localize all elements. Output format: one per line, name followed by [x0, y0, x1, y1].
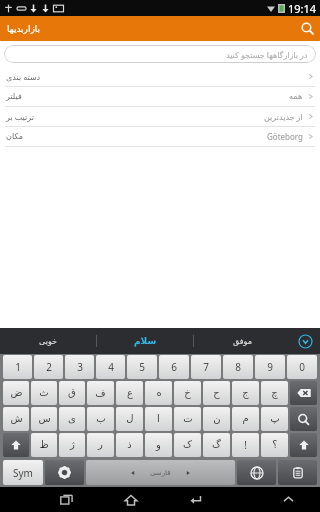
button[interactable]: سلام — [97, 328, 193, 354]
button[interactable]: Recents — [49, 487, 83, 512]
staticText: خوبی — [39, 337, 57, 346]
staticText: ظ — [39, 439, 49, 451]
staticText: 8 — [235, 360, 241, 374]
button[interactable]: خوبی — [0, 328, 96, 354]
button[interactable]: Shift — [290, 433, 317, 457]
staticText: 19:14 — [288, 1, 317, 16]
button[interactable]: ژ — [59, 433, 85, 457]
button[interactable]: ج — [232, 381, 259, 405]
staticText: ن — [213, 413, 221, 425]
staticText: همه — [289, 92, 303, 101]
button[interactable]: گ — [203, 433, 230, 457]
staticText: از جدیدترین — [264, 111, 303, 122]
button[interactable]: خ — [174, 381, 201, 405]
staticText: ق — [68, 387, 76, 399]
staticText: ا — [157, 413, 160, 425]
button[interactable]: ش — [3, 407, 29, 431]
button[interactable]: دسته بندی — [0, 67, 320, 87]
button[interactable]: ا — [145, 407, 172, 431]
staticText: ی — [68, 413, 76, 425]
staticText: م — [242, 413, 249, 425]
staticText: فیلتر — [6, 92, 22, 101]
button[interactable]: فیلتر — [0, 87, 320, 107]
button[interactable]: ب — [87, 407, 114, 431]
button[interactable]: 9 — [255, 355, 285, 379]
button[interactable]: ث — [31, 381, 57, 405]
button[interactable]: پ — [261, 407, 288, 431]
button[interactable]: 2 — [34, 355, 63, 379]
button[interactable]: ه — [145, 381, 172, 405]
button[interactable]: Change language — [237, 460, 276, 485]
button[interactable]: م — [232, 407, 259, 431]
button[interactable]: چ — [261, 381, 288, 405]
button[interactable]: 3 — [65, 355, 94, 379]
button[interactable]: ق — [59, 381, 85, 405]
staticText: Sym — [13, 466, 33, 480]
staticText: 5 — [139, 360, 145, 374]
staticText: س — [38, 413, 51, 425]
staticText: ت — [183, 413, 193, 425]
button[interactable]: ترتیب بر — [0, 107, 320, 127]
button[interactable]: 6 — [159, 355, 189, 379]
staticText: ترتیب بر — [6, 111, 34, 122]
staticText: ! — [244, 438, 247, 452]
button[interactable]: ذ — [116, 433, 143, 457]
button[interactable]: موفق — [194, 328, 290, 354]
button[interactable]: ح — [203, 381, 230, 405]
button[interactable]: س — [31, 407, 57, 431]
staticText: خ — [184, 387, 191, 399]
button[interactable]: Backspace — [290, 381, 317, 405]
button[interactable]: ظ — [31, 433, 57, 457]
staticText: بازاربدیها — [7, 24, 41, 34]
button[interactable]: Clipboard — [278, 460, 317, 485]
button[interactable]: ع — [116, 381, 143, 405]
button[interactable]: Space — [86, 460, 235, 485]
button[interactable]: 0 — [287, 355, 317, 379]
staticText: 1 — [15, 360, 21, 374]
button[interactable]: و — [145, 433, 172, 457]
staticText: 4 — [108, 360, 114, 374]
staticText: فارسی — [150, 469, 171, 477]
button[interactable]: ت — [174, 407, 201, 431]
staticText: ض — [10, 387, 23, 399]
button[interactable]: مکان — [0, 127, 320, 147]
staticText: ه — [156, 387, 162, 399]
button[interactable]: ف — [87, 381, 114, 405]
button[interactable]: ض — [3, 381, 29, 405]
button[interactable]: ک — [174, 433, 201, 457]
button[interactable]: ن — [203, 407, 230, 431]
button[interactable]: Home — [114, 487, 148, 512]
staticText: ب — [96, 413, 106, 425]
staticText: 3 — [77, 360, 83, 374]
staticText: 9 — [267, 360, 273, 374]
staticText: موفق — [233, 337, 252, 346]
button[interactable]: 5 — [127, 355, 157, 379]
button[interactable]: در بازارگاهها جستجو کنید — [4, 45, 316, 63]
staticText: چ — [271, 387, 278, 399]
button[interactable]: ر — [87, 433, 114, 457]
button[interactable]: 4 — [96, 355, 125, 379]
button[interactable]: Input settings — [45, 460, 84, 485]
button[interactable]: ل — [116, 407, 143, 431]
button[interactable]: ی — [59, 407, 85, 431]
button[interactable]: Search — [290, 407, 317, 431]
button[interactable]: 7 — [191, 355, 221, 379]
button[interactable]: Search — [295, 16, 320, 41]
button[interactable]: 8 — [223, 355, 253, 379]
button[interactable]: ؟ — [261, 433, 288, 457]
button[interactable]: Shift — [3, 433, 29, 457]
button[interactable]: 1 — [3, 355, 32, 379]
button[interactable]: Back — [179, 487, 213, 512]
staticText: پ — [270, 413, 280, 425]
staticText: Göteborg — [267, 131, 303, 142]
staticText: دسته بندی — [6, 71, 41, 82]
staticText: ع — [127, 387, 133, 399]
button[interactable]: ! — [232, 433, 259, 457]
staticText: ل — [126, 413, 134, 425]
button[interactable]: Sym — [3, 460, 43, 485]
staticText: ح — [213, 387, 220, 399]
button[interactable]: More — [271, 487, 305, 512]
staticText: سلام — [134, 336, 157, 346]
staticText: ج — [242, 387, 249, 399]
button[interactable]: Expand suggestions — [290, 328, 320, 354]
